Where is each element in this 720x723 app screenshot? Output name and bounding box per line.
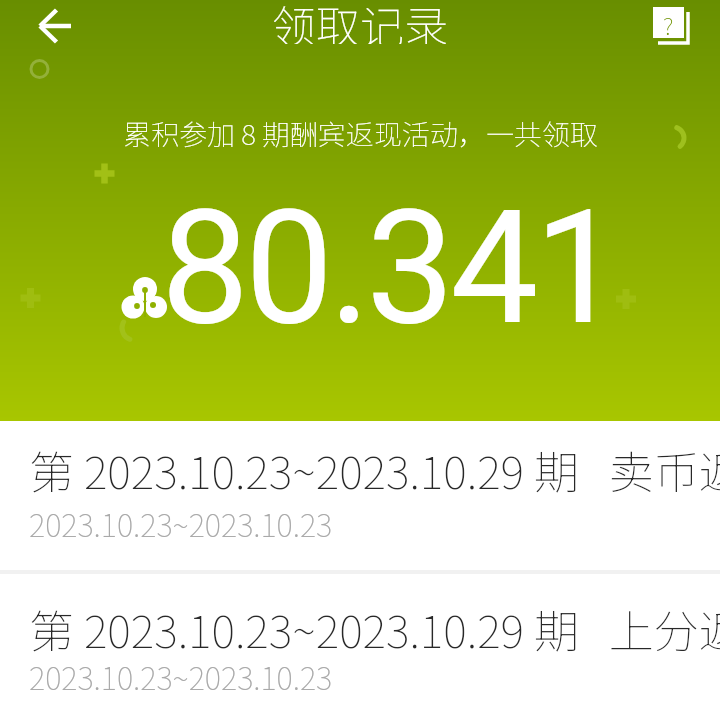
button[interactable]: 第 2023.10.23~2023.10.29 期 卖币返现: [0, 421, 720, 570]
staticText: 累积参加 8 期酬宾返现活动，一共领取: [123, 113, 598, 154]
staticText: 第 2023.10.23~2023.10.29 期 上分返现: [29, 596, 720, 661]
staticText: 2023.10.23~2023.10.23: [29, 654, 333, 696]
staticText: 领取记录: [272, 0, 448, 44]
button[interactable]: ?: [645, 0, 697, 52]
staticText: 2023.10.23~2023.10.23: [29, 501, 333, 543]
staticText: ?: [663, 7, 674, 38]
staticText: 第 2023.10.23~2023.10.29 期 卖币返现: [29, 437, 720, 502]
button[interactable]: 第 2023.10.23~2023.10.29 期 上分返现: [0, 574, 720, 723]
button[interactable]: [26, 0, 82, 56]
staticText: 80.341: [161, 176, 619, 326]
